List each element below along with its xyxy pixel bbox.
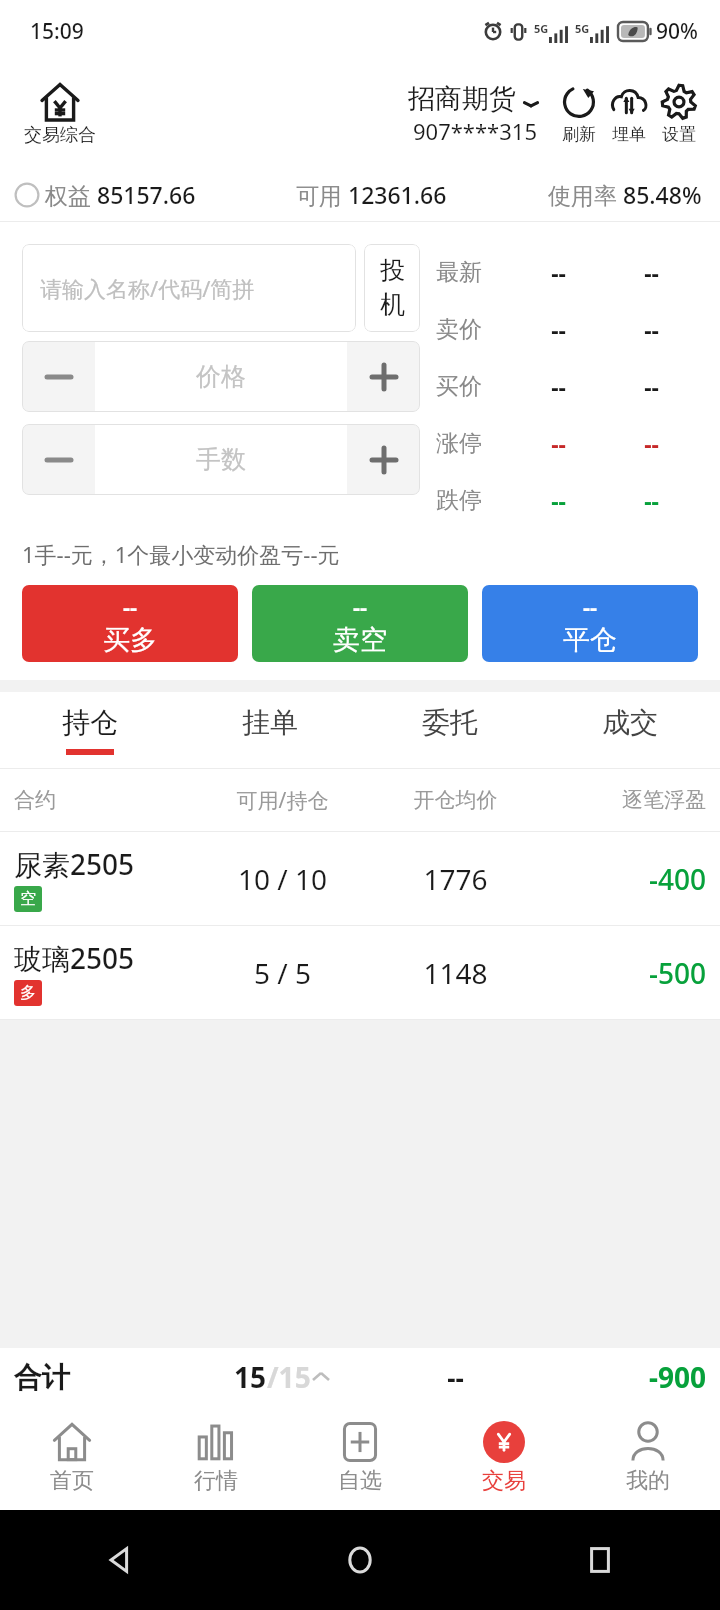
staticText: 挂单 xyxy=(242,705,298,740)
button[interactable]: 持仓 xyxy=(0,692,180,768)
staticText: 平仓 xyxy=(563,623,617,657)
staticText: 价格 xyxy=(196,361,246,392)
staticText: 请输入名称/代码/简拼 xyxy=(40,273,255,303)
button[interactable]: -- xyxy=(22,585,238,662)
staticText: 委托 xyxy=(422,705,478,740)
staticText: 玻璃2505 xyxy=(14,939,135,977)
staticText: 合约 xyxy=(14,787,196,813)
staticText: -- xyxy=(512,257,605,288)
staticText: 权益 xyxy=(45,179,97,210)
button[interactable]: 请输入名称/代码/简拼 xyxy=(22,244,356,332)
staticText: -- xyxy=(605,428,698,459)
staticText: 尿素2505 xyxy=(14,845,135,883)
staticText: 卖空 xyxy=(333,623,387,657)
staticText: 刷新 xyxy=(562,124,596,145)
button[interactable]: 成交 xyxy=(540,692,720,768)
staticText: 行情 xyxy=(194,1467,238,1495)
staticText: -- xyxy=(583,591,598,621)
staticText: 1148 xyxy=(369,954,542,992)
staticText: 85157.66 xyxy=(97,179,196,210)
staticText: 空 xyxy=(20,889,36,909)
staticText: 5 / 5 xyxy=(196,954,369,992)
staticText: 12361.66 xyxy=(348,179,447,210)
staticText: 907****315 xyxy=(413,116,537,146)
staticText: 开仓均价 xyxy=(369,787,542,813)
staticText: 买价 xyxy=(436,372,512,401)
button[interactable]: 合计 xyxy=(0,1348,720,1406)
staticText: -- xyxy=(512,485,605,516)
staticText: 跌停 xyxy=(436,486,512,515)
staticText: 可用/持仓 xyxy=(196,786,369,815)
staticText: 使用率 xyxy=(548,179,623,210)
staticText: 设置 xyxy=(662,124,696,145)
staticText: -500 xyxy=(542,954,706,992)
button[interactable]: -- xyxy=(482,585,698,662)
staticText: -- xyxy=(605,371,698,402)
staticText: -- xyxy=(369,1360,542,1395)
staticText: 买多 xyxy=(103,623,157,657)
staticText: -- xyxy=(123,591,138,621)
button[interactable]: 交易综合 xyxy=(24,82,96,147)
button[interactable]: 减 xyxy=(22,341,95,412)
button[interactable]: -- xyxy=(252,585,468,662)
staticText: -- xyxy=(605,314,698,345)
staticText: 埋单 xyxy=(612,124,646,145)
button[interactable]: 交易 xyxy=(432,1406,576,1510)
staticText: -- xyxy=(605,257,698,288)
button[interactable]: 加 xyxy=(347,424,420,495)
button[interactable]: 招商期货 xyxy=(408,82,544,146)
button[interactable]: 刷新 xyxy=(554,83,604,145)
staticText: -- xyxy=(353,591,368,621)
button[interactable]: 设置 xyxy=(654,83,704,145)
button[interactable]: 手数 xyxy=(95,424,347,495)
button[interactable]: 加 xyxy=(347,341,420,412)
staticText: 持仓 xyxy=(62,705,118,740)
staticText: 1776 xyxy=(369,860,542,898)
button[interactable]: 尿素2505 xyxy=(0,832,720,926)
staticText: 85.48% xyxy=(623,179,702,210)
button[interactable]: 减 xyxy=(22,424,95,495)
staticText: -900 xyxy=(542,1358,706,1396)
button[interactable]: 自选 xyxy=(288,1406,432,1510)
staticText: 首页 xyxy=(50,1467,94,1495)
staticText: 我的 xyxy=(626,1467,670,1495)
button[interactable]: 行情 xyxy=(144,1406,288,1510)
staticText: 15 xyxy=(234,1358,267,1396)
button[interactable]: 埋单 xyxy=(604,83,654,145)
staticText: 逐笔浮盈 xyxy=(542,787,706,813)
staticText: 投 机 xyxy=(380,255,405,321)
staticText: 可用 xyxy=(296,179,348,210)
staticText: -- xyxy=(512,428,605,459)
staticText: 多 xyxy=(20,983,36,1003)
staticText: 卖价 xyxy=(436,315,512,344)
staticText: /15 xyxy=(267,1358,311,1396)
button[interactable]: 价格 xyxy=(95,341,347,412)
button[interactable]: 投 机 xyxy=(364,244,420,332)
staticText: 10 / 10 xyxy=(196,860,369,898)
button[interactable]: 首页 xyxy=(0,1406,144,1510)
staticText: -- xyxy=(512,371,605,402)
staticText: 合计 xyxy=(14,1360,196,1395)
staticText: -400 xyxy=(542,860,706,898)
staticText: 5G xyxy=(575,21,590,36)
staticText: 1手--元，1个最小变动价盈亏--元 xyxy=(22,539,340,569)
staticText: 涨停 xyxy=(436,429,512,458)
button[interactable]: 玻璃2505 xyxy=(0,926,720,1020)
button[interactable]: 挂单 xyxy=(180,692,360,768)
staticText: 交易 xyxy=(482,1467,526,1495)
staticText: 招商期货 xyxy=(408,82,516,116)
button[interactable]: 我的 xyxy=(576,1406,720,1510)
staticText: -- xyxy=(605,485,698,516)
staticText: 交易综合 xyxy=(24,124,96,147)
staticText: 最新 xyxy=(436,258,512,287)
staticText: -- xyxy=(512,314,605,345)
staticText: 成交 xyxy=(602,705,658,740)
staticText: 手数 xyxy=(196,444,246,475)
staticText: 90% xyxy=(656,17,698,46)
staticText: 5G xyxy=(534,21,549,36)
staticText: 自选 xyxy=(338,1467,382,1495)
button[interactable]: 委托 xyxy=(360,692,540,768)
staticText: 15:09 xyxy=(30,17,84,46)
